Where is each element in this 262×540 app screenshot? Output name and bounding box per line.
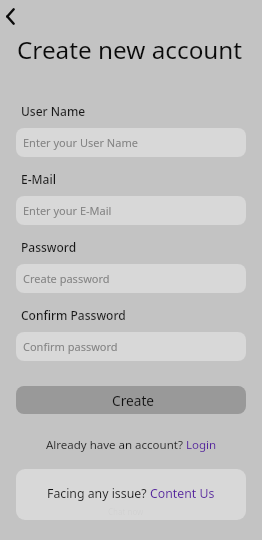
staticText: Enter your E-Mail [23,203,112,218]
staticText: Already have an account? [46,437,186,453]
staticText: Confirm password [23,339,118,354]
staticText: Password [21,239,77,255]
staticText: User Name [21,103,86,119]
button[interactable]: Create password [16,264,246,293]
staticText: Confirm Password [21,307,126,323]
staticText: E-Mail [21,171,56,187]
staticText: Create password [23,271,110,286]
staticText: Create [112,391,155,410]
button[interactable]: Enter your E-Mail [16,196,246,225]
button[interactable]: Facing any issue? [16,469,246,520]
button[interactable]: Login [186,437,217,453]
button[interactable]: Create [16,386,246,414]
button[interactable]: Back [0,4,22,28]
staticText: Facing any issue? [47,485,150,502]
staticText: Enter your User Name [23,135,138,150]
button[interactable]: Confirm password [16,332,246,361]
staticText: Create new account [17,33,243,66]
button[interactable]: Enter your User Name [16,128,246,157]
button[interactable]: Content Us [150,485,215,502]
